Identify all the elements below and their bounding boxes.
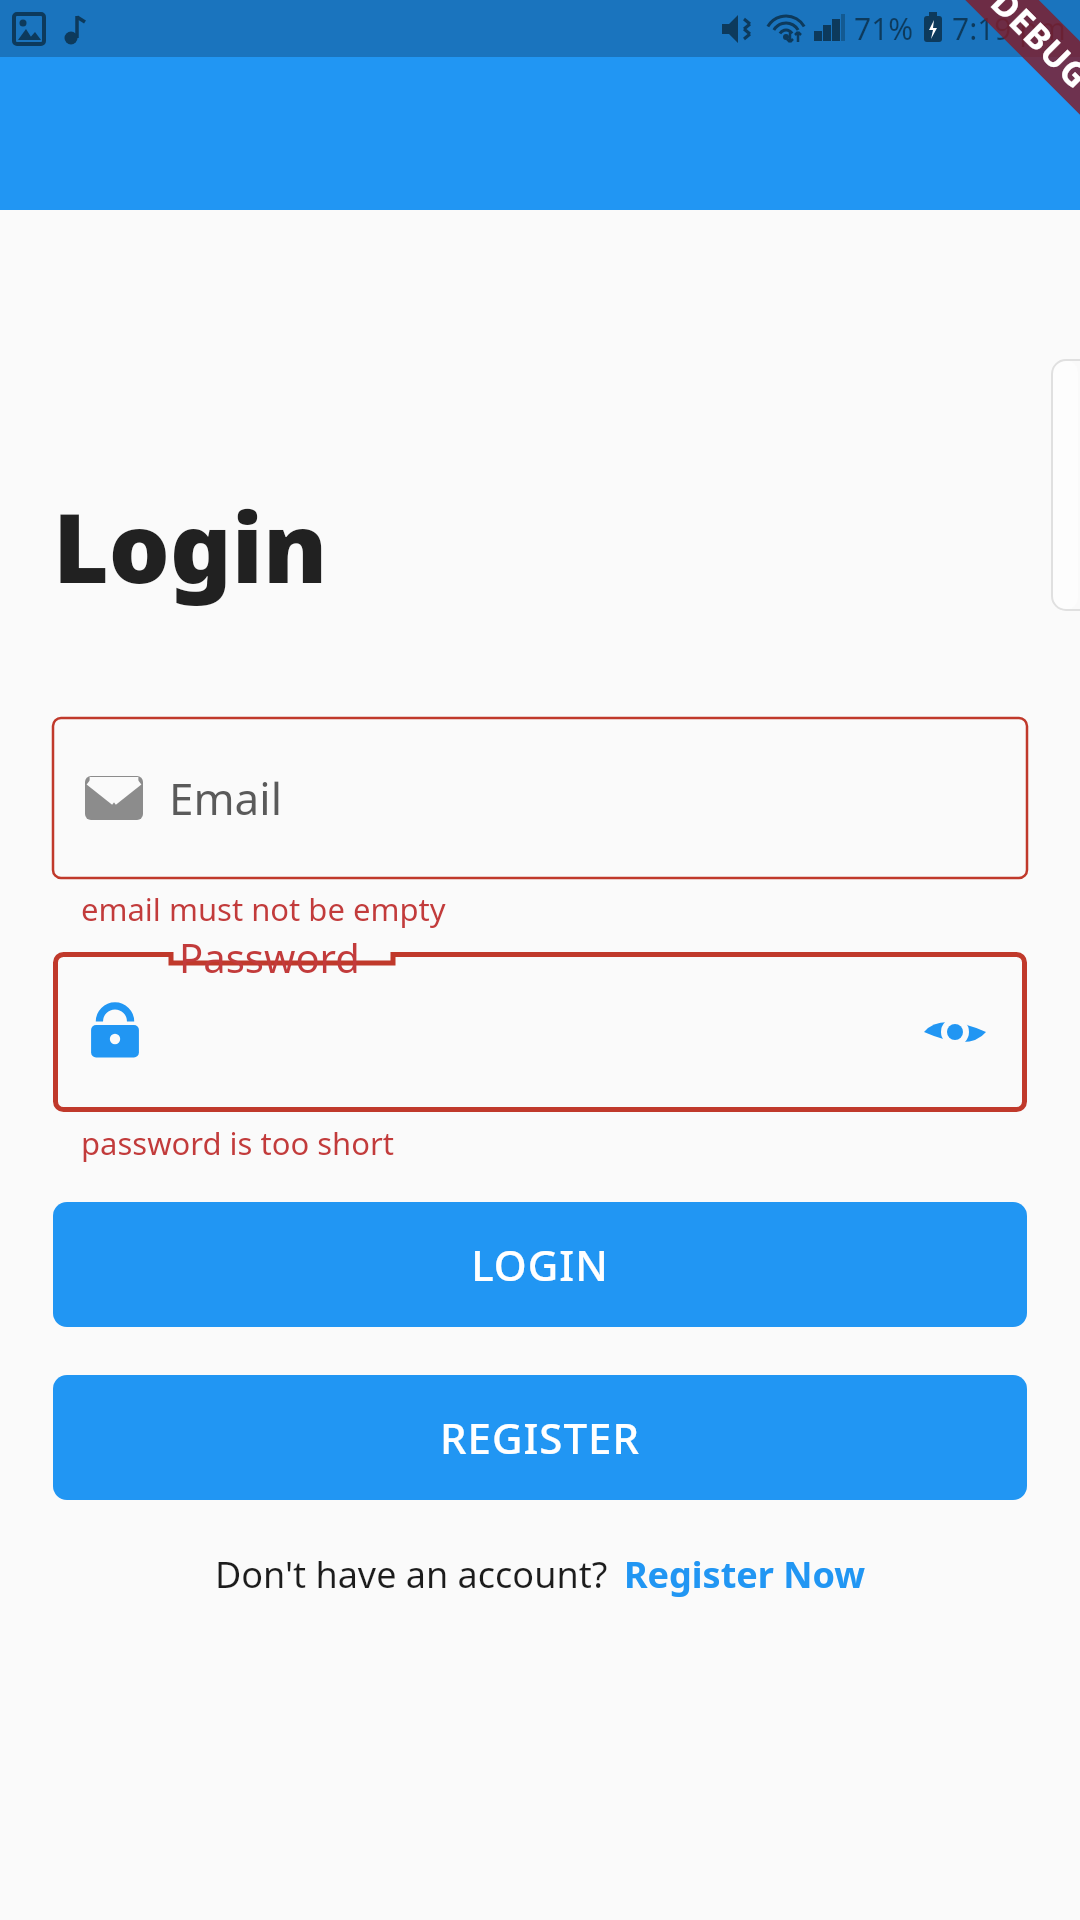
button[interactable]: Password bbox=[53, 952, 1027, 1112]
staticText: email must not be empty bbox=[81, 888, 446, 930]
staticText: DEBUG bbox=[982, 0, 1080, 98]
staticText: Password bbox=[179, 930, 360, 984]
button[interactable]: LOGIN bbox=[53, 1202, 1027, 1327]
staticText: Email bbox=[169, 768, 282, 828]
button[interactable]: Show password bbox=[919, 996, 991, 1068]
button[interactable]: REGISTER bbox=[53, 1375, 1027, 1500]
staticText: 7:19 pm bbox=[952, 8, 1066, 49]
staticText: Login bbox=[53, 480, 328, 611]
button[interactable]: Register Now bbox=[624, 1550, 866, 1599]
staticText: REGISTER bbox=[440, 1409, 640, 1466]
staticText: LOGIN bbox=[471, 1236, 609, 1293]
staticText: password is too short bbox=[81, 1122, 395, 1164]
staticText: Don't have an account? bbox=[215, 1550, 608, 1599]
button[interactable]: Email bbox=[53, 718, 1027, 878]
staticText: Register Now bbox=[624, 1550, 866, 1599]
staticText: 71% bbox=[854, 8, 914, 49]
